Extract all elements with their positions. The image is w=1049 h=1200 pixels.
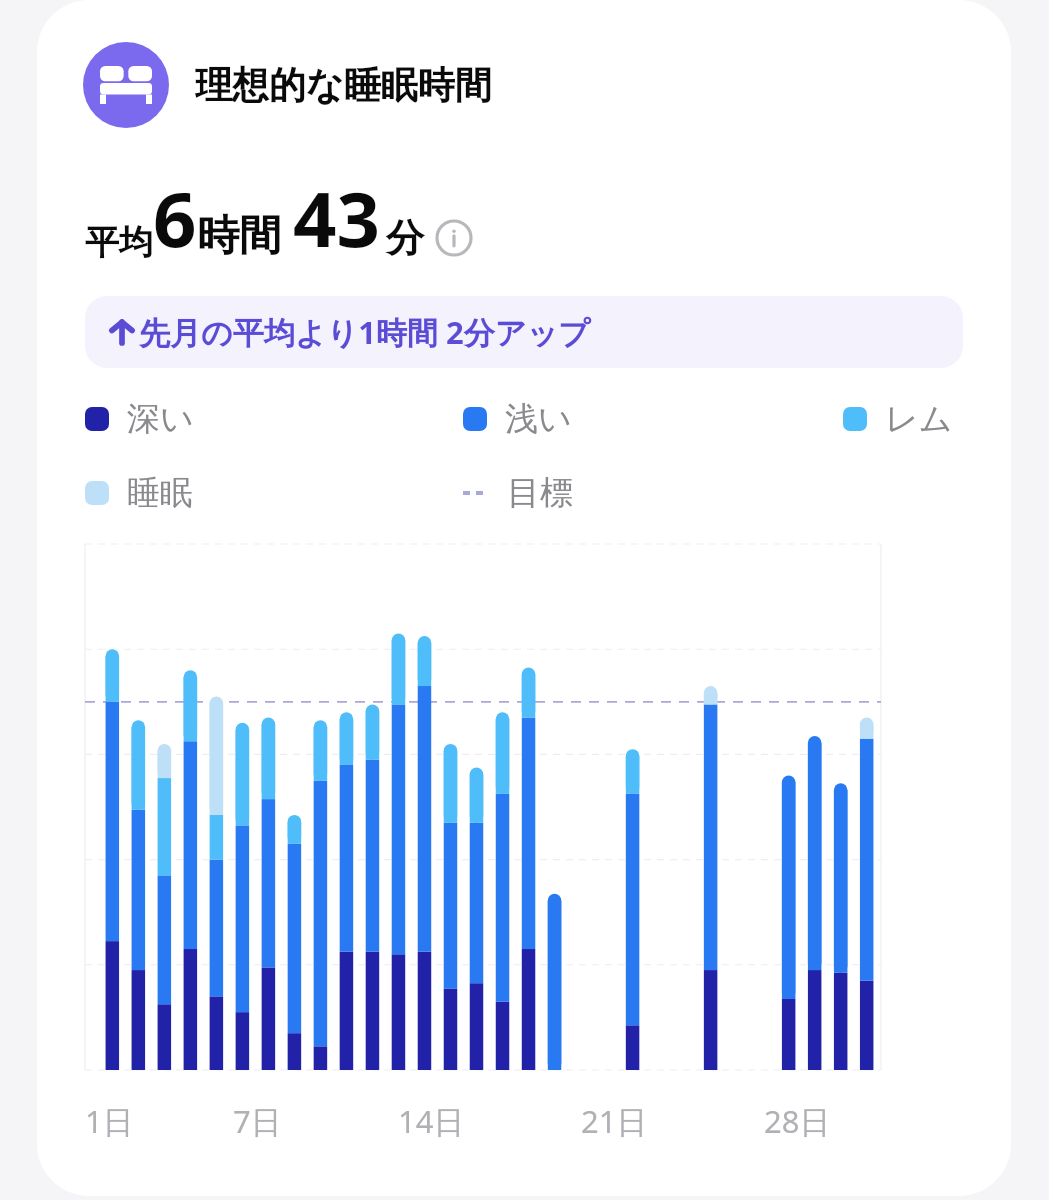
staticText: 分: [386, 214, 424, 262]
staticText: 43: [293, 166, 380, 270]
staticText: 先月の平均より1時間 2分アップ: [139, 311, 590, 353]
staticText: 14日: [398, 1100, 465, 1142]
button[interactable]: 目標: [463, 472, 573, 514]
button[interactable]: 平均: [85, 166, 474, 270]
staticText: レム: [885, 398, 953, 440]
button[interactable]: レム: [843, 398, 953, 440]
staticText: 理想的な睡眠時間: [195, 62, 492, 109]
button[interactable]: 先月の平均より1時間 2分アップ: [85, 296, 963, 368]
button[interactable]: 理想的な睡眠時間: [83, 42, 1011, 128]
button[interactable]: 浅い: [463, 398, 843, 440]
staticText: 21日: [581, 1100, 648, 1142]
staticText: 1日: [85, 1100, 134, 1142]
button[interactable]: 詳細情報: [434, 218, 474, 258]
staticText: 睡眠: [127, 472, 193, 514]
staticText: 平均: [85, 221, 153, 264]
staticText: 時間: [197, 210, 281, 263]
staticText: 深い: [127, 398, 194, 440]
staticText: 28日: [764, 1100, 831, 1142]
staticText: 浅い: [505, 398, 572, 440]
button[interactable]: 睡眠: [85, 472, 463, 514]
button[interactable]: 深い: [85, 398, 463, 440]
staticText: 6: [153, 166, 197, 270]
staticText: 7日: [233, 1100, 282, 1142]
staticText: 目標: [507, 472, 573, 514]
